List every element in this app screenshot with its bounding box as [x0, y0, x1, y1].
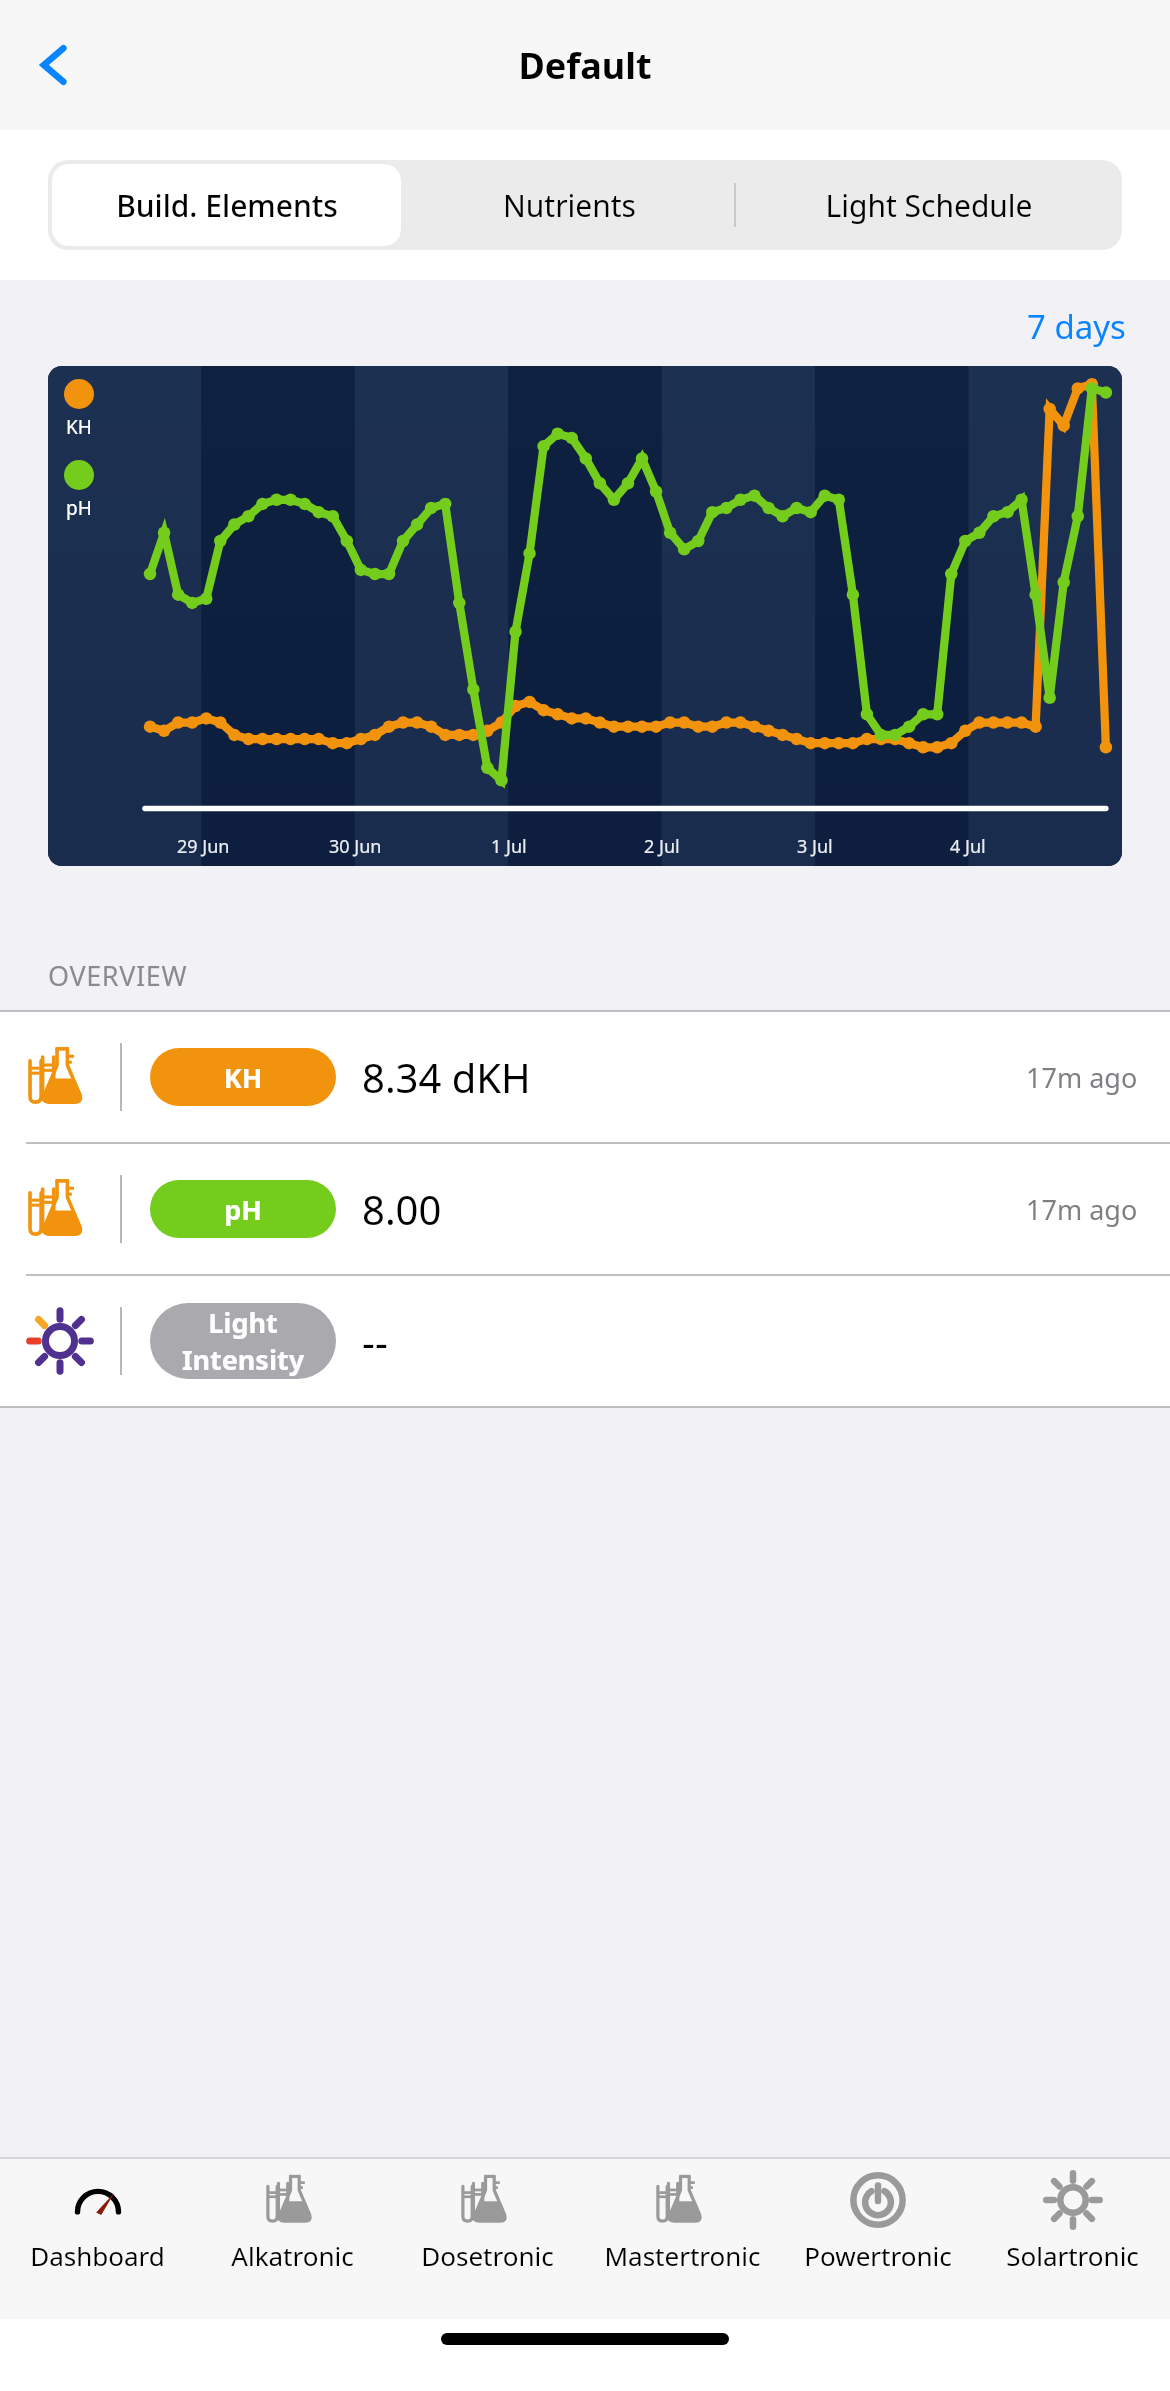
staticText: 8.34 dKH — [362, 1050, 531, 1104]
other: Mastertronic — [652, 2169, 714, 2231]
staticText: 8.00 — [362, 1182, 442, 1236]
staticText: Build. Elements — [116, 185, 338, 226]
staticText: Powertronic — [804, 2238, 952, 2273]
other: Dosetronic — [457, 2169, 519, 2231]
staticText: 29 Jun — [177, 834, 230, 859]
button[interactable]: Alkatronic — [195, 2159, 390, 2273]
staticText: 2 Jul — [644, 834, 680, 859]
button[interactable]: Light Intensity — [0, 1276, 1170, 1406]
other: Powertronic — [847, 2169, 909, 2231]
button[interactable]: Build. Elements — [52, 164, 401, 246]
other: Dashboard — [67, 2169, 129, 2231]
button[interactable]: Solartronic — [975, 2159, 1170, 2273]
button[interactable]: Dosetronic — [390, 2159, 585, 2273]
staticText: 30 Jun — [329, 834, 382, 859]
button[interactable]: Dashboard — [0, 2159, 195, 2273]
button[interactable]: pH — [0, 1144, 1170, 1274]
staticText: Solartronic — [1006, 2238, 1139, 2273]
staticText: 4 Jul — [950, 834, 986, 859]
staticText: 7 days — [1027, 304, 1126, 349]
button[interactable]: Back — [20, 30, 90, 100]
other: Alkatronic — [262, 2169, 324, 2231]
staticText: pH — [150, 1191, 336, 1228]
staticText: 17m ago — [1026, 1191, 1138, 1228]
staticText: KH — [150, 1059, 336, 1096]
staticText: pH — [66, 495, 92, 521]
staticText: 3 Jul — [797, 834, 833, 859]
staticText: 17m ago — [1026, 1059, 1138, 1096]
staticText: Dashboard — [30, 2238, 165, 2273]
button[interactable]: Powertronic — [780, 2159, 975, 2273]
staticText: Light Intensity — [150, 1304, 336, 1378]
button[interactable]: 7 days — [1027, 304, 1126, 349]
staticText: Light Schedule — [825, 185, 1033, 226]
staticText: KH — [66, 414, 92, 440]
staticText: Mastertronic — [604, 2238, 761, 2273]
staticText: Dosetronic — [421, 2238, 554, 2273]
staticText: 1 Jul — [491, 834, 527, 859]
staticText: Nutrients — [503, 185, 636, 226]
button[interactable]: Mastertronic — [585, 2159, 780, 2273]
staticText: -- — [362, 1314, 388, 1368]
other: Solartronic — [1042, 2169, 1104, 2231]
button[interactable]: Light Schedule — [736, 160, 1122, 250]
staticText: Default — [0, 41, 1170, 90]
staticText: Alkatronic — [231, 2238, 354, 2273]
button[interactable]: KH — [0, 1012, 1170, 1142]
staticText: OVERVIEW — [48, 957, 188, 994]
button[interactable]: Nutrients — [405, 160, 734, 250]
